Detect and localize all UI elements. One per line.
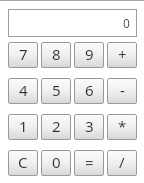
button[interactable]: = [74, 150, 104, 176]
button[interactable]: 0 [8, 9, 137, 37]
staticText: 2 [52, 116, 61, 136]
staticText: + [118, 44, 127, 64]
staticText: 0 [123, 15, 130, 31]
staticText: 5 [52, 80, 61, 100]
button[interactable]: 5 [41, 78, 71, 104]
staticText: 9 [85, 44, 94, 64]
staticText: 8 [52, 44, 61, 64]
button[interactable]: 7 [8, 42, 38, 68]
button[interactable]: * [107, 114, 137, 140]
staticText: 4 [19, 80, 28, 100]
button[interactable]: / [107, 150, 137, 176]
button[interactable]: 6 [74, 78, 104, 104]
button[interactable]: 3 [74, 114, 104, 140]
staticText: 6 [85, 80, 94, 100]
button[interactable]: 9 [74, 42, 104, 68]
button[interactable]: 1 [8, 114, 38, 140]
button[interactable]: - [107, 78, 137, 104]
button[interactable]: C [8, 150, 38, 176]
staticText: 1 [19, 116, 28, 136]
button[interactable]: 0 [41, 150, 71, 176]
staticText: / [119, 152, 125, 172]
button[interactable]: 8 [41, 42, 71, 68]
staticText: 7 [19, 44, 28, 64]
staticText: * [118, 116, 127, 136]
staticText: = [85, 152, 94, 172]
staticText: 3 [85, 116, 94, 136]
button[interactable]: 4 [8, 78, 38, 104]
staticText: C [18, 152, 28, 172]
button[interactable]: + [107, 42, 137, 68]
button[interactable]: 2 [41, 114, 71, 140]
staticText: 0 [52, 152, 61, 172]
staticText: - [120, 80, 125, 100]
